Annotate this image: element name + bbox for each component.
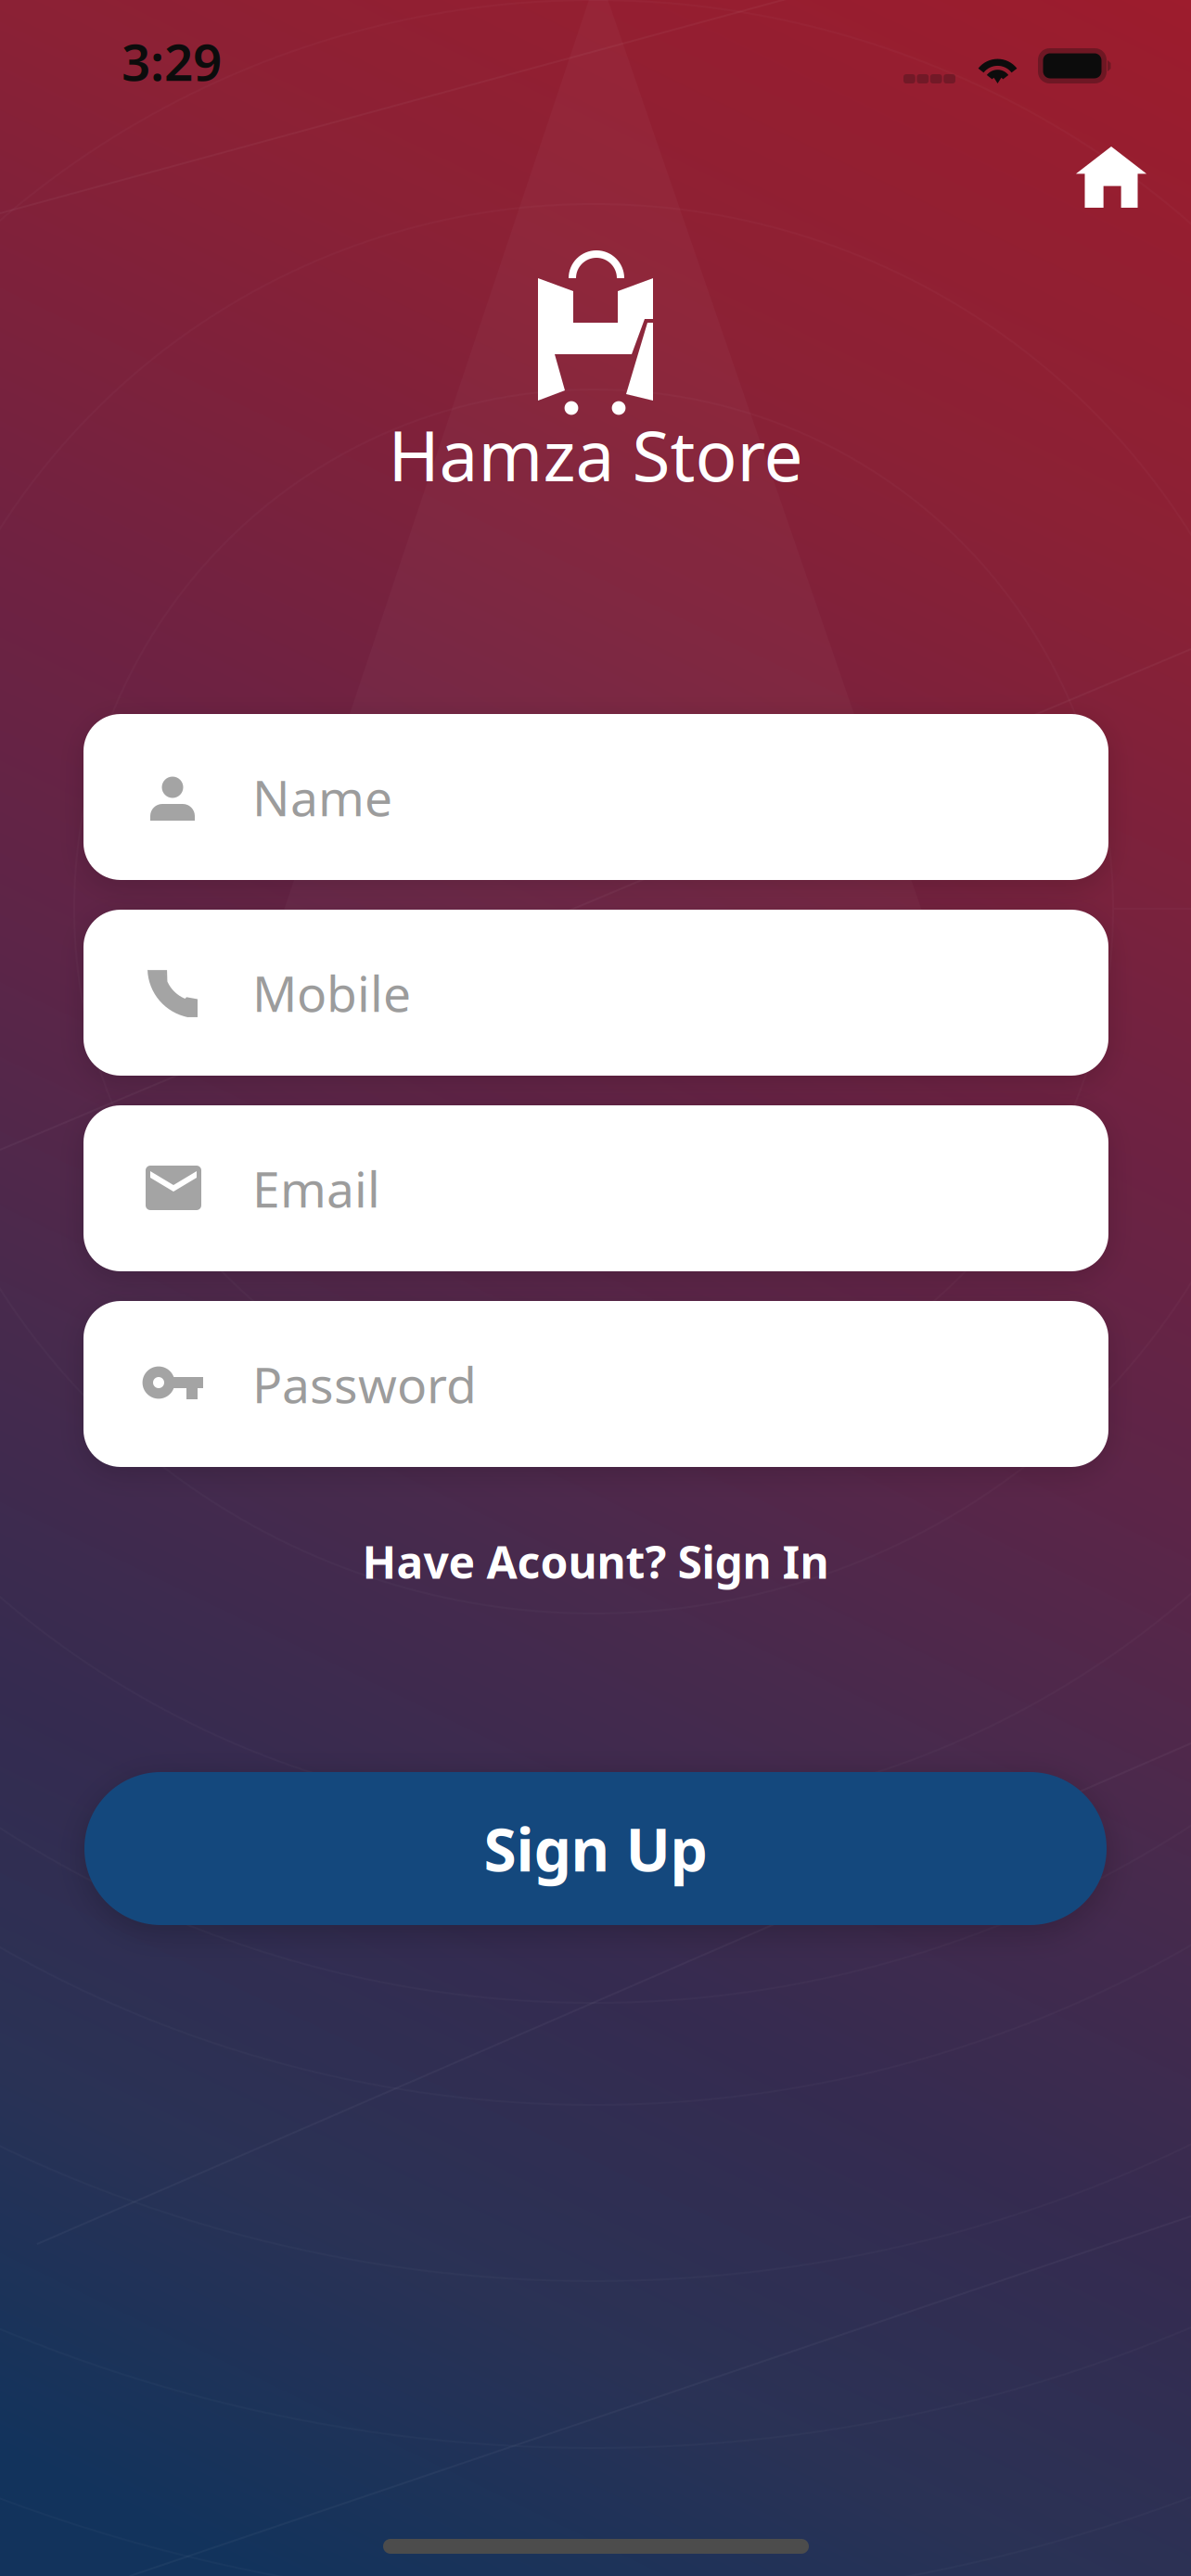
- staticText: Hamza Store: [388, 408, 803, 500]
- staticText: 3:29: [122, 28, 222, 95]
- staticText: Sign Up: [484, 1809, 707, 1888]
- staticText: Email: [252, 1155, 380, 1221]
- button[interactable]: Name: [83, 714, 1108, 880]
- staticText: Mobile: [252, 960, 411, 1025]
- staticText: Name: [252, 764, 392, 830]
- button[interactable]: Home: [1052, 122, 1171, 232]
- button[interactable]: Email: [83, 1105, 1108, 1271]
- button[interactable]: Have Acount? Sign In: [0, 1520, 1191, 1603]
- button[interactable]: Password: [83, 1301, 1108, 1467]
- button[interactable]: Mobile: [83, 910, 1108, 1076]
- staticText: Password: [252, 1351, 477, 1417]
- staticText: Have Acount? Sign In: [362, 1532, 829, 1591]
- button[interactable]: Sign Up: [84, 1772, 1107, 1925]
